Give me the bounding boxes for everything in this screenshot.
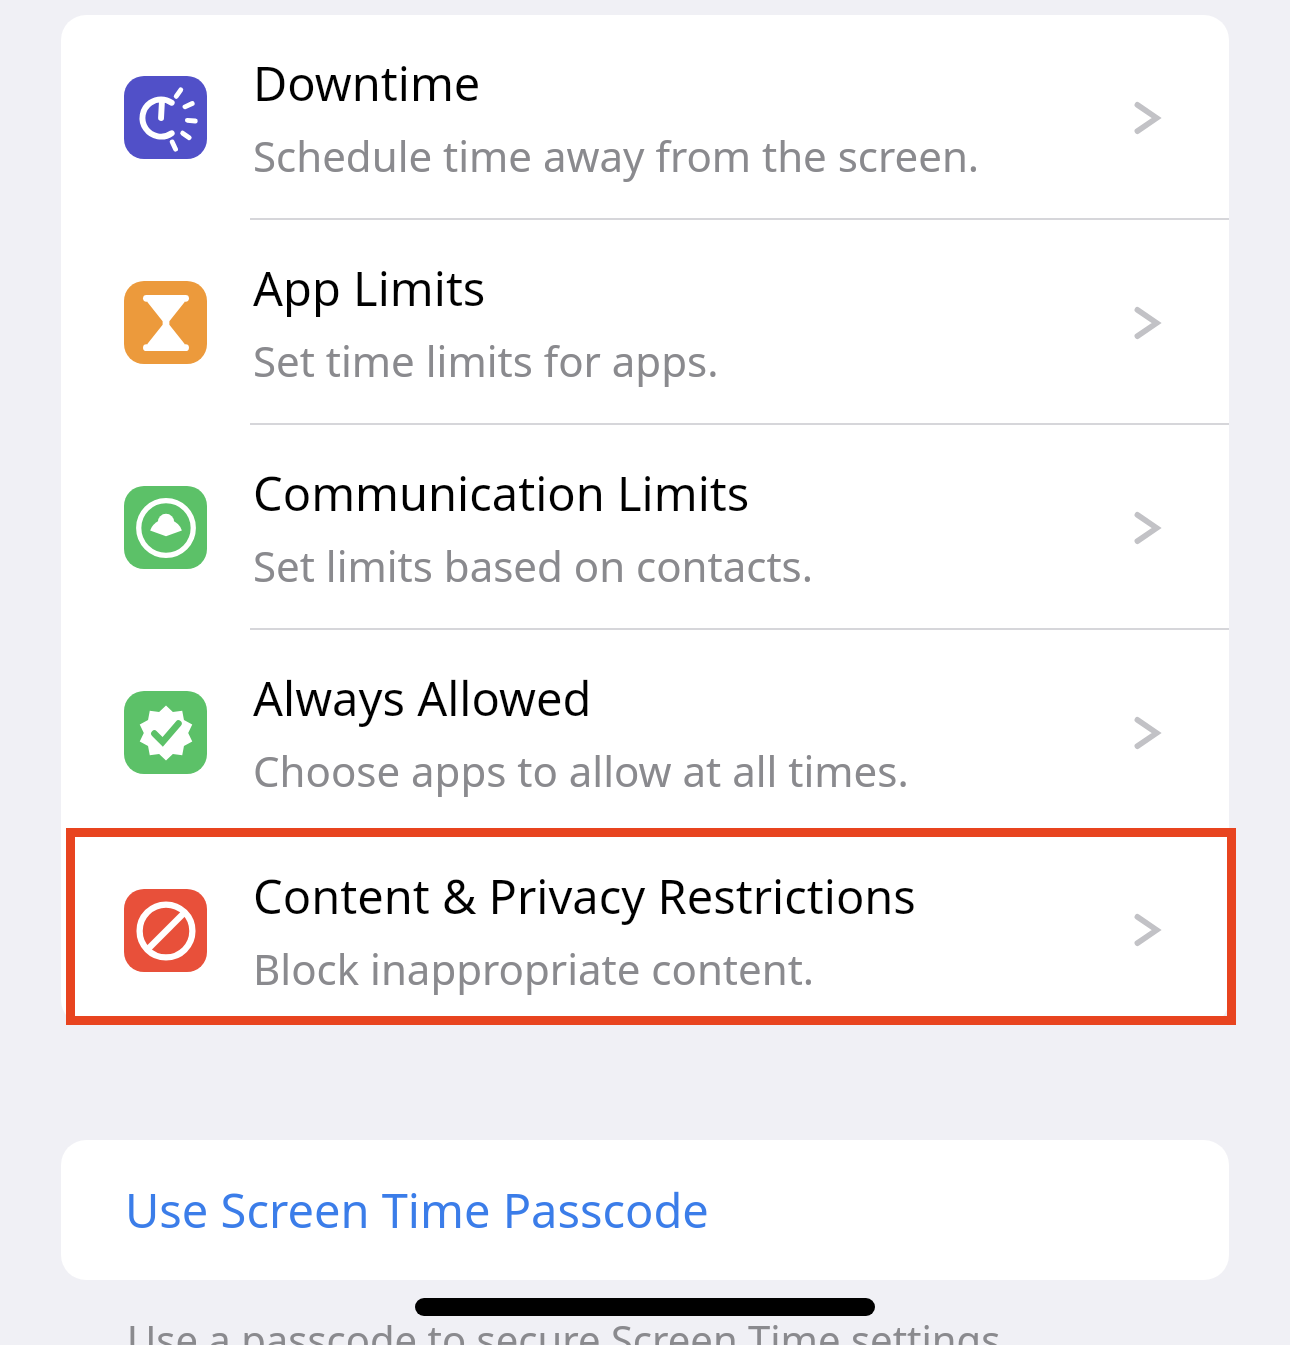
staticText: App Limits — [253, 256, 486, 320]
button[interactable]: App Limits — [61, 220, 1229, 425]
button[interactable]: Content & Privacy Restrictions — [61, 835, 1229, 1025]
staticText: Choose apps to allow at all times. — [253, 742, 909, 799]
button[interactable]: Downtime — [61, 15, 1229, 220]
staticText: Block inappropriate content. — [253, 940, 815, 997]
staticText: Schedule time away from the screen. — [253, 127, 980, 184]
staticText: Downtime — [253, 51, 481, 115]
staticText: Use a passcode to secure Screen Time set… — [127, 1312, 1001, 1345]
staticText: Always Allowed — [253, 666, 592, 730]
staticText: Set time limits for apps. — [253, 332, 719, 389]
staticText: Set limits based on contacts. — [253, 537, 813, 594]
button[interactable]: Always Allowed — [61, 630, 1229, 835]
staticText: Use Screen Time Passcode — [125, 1178, 709, 1242]
staticText: Content & Privacy Restrictions — [253, 864, 916, 928]
staticText: Communication Limits — [253, 461, 750, 525]
button[interactable]: Communication Limits — [61, 425, 1229, 630]
button[interactable]: Use Screen Time Passcode — [61, 1140, 1229, 1280]
